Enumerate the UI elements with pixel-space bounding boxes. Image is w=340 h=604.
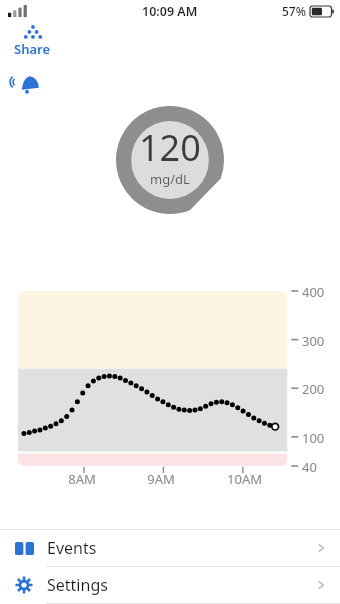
button[interactable]: Alerts [10,68,44,100]
staticText: 57% [282,3,306,19]
staticText: 10:09 AM [142,3,198,20]
staticText: 300 [302,332,325,350]
button[interactable]: Events [0,530,340,566]
button[interactable]: Settings [0,567,340,603]
staticText: 9AM [147,470,175,488]
staticText: 10AM [227,470,262,488]
staticText: 200 [302,380,325,398]
staticText: 120 [139,123,201,172]
button[interactable]: Current glucose 120 mg/dL [116,106,224,214]
staticText: 8AM [68,470,96,488]
staticText: 100 [302,429,325,447]
staticText: 400 [302,283,325,301]
staticText: 40 [302,458,317,476]
staticText: Settings [47,574,108,596]
staticText: Share [14,40,51,58]
button[interactable]: Share [10,22,55,60]
staticText: Events [47,537,97,559]
staticText: mg/dL [150,170,190,188]
